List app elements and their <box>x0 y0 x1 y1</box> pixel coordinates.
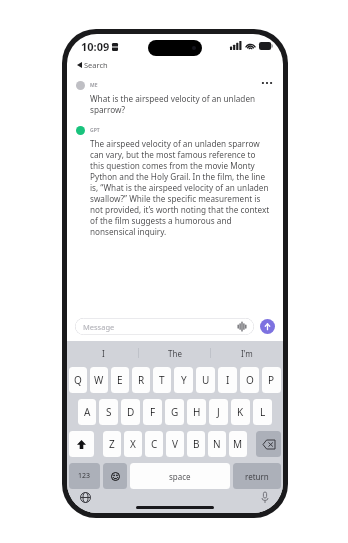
staticText: U <box>202 373 210 387</box>
button[interactable]: Emoji <box>103 463 127 489</box>
staticText: T <box>159 373 165 387</box>
button[interactable]: B <box>187 431 205 457</box>
button[interactable]: C <box>145 431 163 457</box>
button[interactable]: J <box>209 399 228 425</box>
staticText: G <box>171 405 179 419</box>
button[interactable]: X <box>124 431 142 457</box>
button[interactable]: S <box>99 399 118 425</box>
staticText: I'm <box>241 348 253 359</box>
button[interactable]: V <box>166 431 184 457</box>
button[interactable]: A <box>78 399 96 425</box>
staticText: J <box>217 405 220 419</box>
staticText: W <box>94 373 104 387</box>
button[interactable]: Message <box>75 318 254 335</box>
button[interactable]: Change keyboard language <box>77 489 93 505</box>
button[interactable]: D <box>121 399 140 425</box>
staticText: N <box>213 437 221 451</box>
staticText: The <box>168 348 182 359</box>
button[interactable]: E <box>111 367 129 393</box>
button[interactable]: N <box>208 431 226 457</box>
staticText: H <box>193 405 201 419</box>
button[interactable]: Y <box>174 367 193 393</box>
staticText: 10:09 <box>81 39 110 54</box>
button[interactable]: T <box>153 367 171 393</box>
staticText: Y <box>181 373 187 387</box>
button[interactable]: U <box>196 367 215 393</box>
staticText: M <box>233 437 243 451</box>
button[interactable]: R <box>132 367 150 393</box>
button[interactable]: M <box>229 431 247 457</box>
staticText: Search <box>84 60 108 70</box>
staticText: space <box>169 471 191 482</box>
staticText: Z <box>109 437 115 451</box>
staticText: Message <box>83 322 115 332</box>
staticText: O <box>246 373 254 387</box>
staticText: ME <box>90 82 98 89</box>
button[interactable]: More options <box>257 73 277 93</box>
button[interactable]: Shift <box>69 431 94 457</box>
button[interactable]: Q <box>69 367 87 393</box>
staticText: K <box>237 405 244 419</box>
staticText: C <box>151 437 158 451</box>
button[interactable]: Z <box>103 431 121 457</box>
button[interactable]: G <box>165 399 184 425</box>
button[interactable]: The <box>139 341 211 365</box>
button[interactable]: 123 <box>69 463 100 489</box>
staticText: I <box>102 348 105 359</box>
button[interactable]: O <box>240 367 259 393</box>
staticText: GPT <box>90 127 100 134</box>
staticText: L <box>260 405 266 419</box>
staticText: P <box>268 373 275 387</box>
staticText: return <box>245 471 269 482</box>
button[interactable]: F <box>143 399 162 425</box>
staticText: 123 <box>78 471 91 481</box>
staticText: A <box>84 405 91 419</box>
button[interactable]: H <box>187 399 206 425</box>
staticText: S <box>106 405 112 419</box>
button[interactable]: Dictate <box>257 489 273 505</box>
staticText: Q <box>74 373 82 387</box>
staticText: The airspeed velocity of an unladen spar… <box>90 138 271 237</box>
button[interactable]: K <box>231 399 250 425</box>
button[interactable]: I <box>218 367 237 393</box>
button[interactable]: return <box>233 463 281 489</box>
staticText: X <box>130 437 136 451</box>
staticText: B <box>193 437 200 451</box>
staticText: V <box>172 437 178 451</box>
button[interactable]: Back to Search <box>77 58 283 71</box>
staticText: I <box>226 373 230 387</box>
staticText: E <box>117 373 123 387</box>
button[interactable]: W <box>90 367 108 393</box>
staticText: What is the airspeed velocity of an unla… <box>90 93 271 115</box>
button[interactable]: I'm <box>211 341 283 365</box>
button[interactable]: Backspace <box>256 431 281 457</box>
button[interactable]: space <box>130 463 230 489</box>
staticText: F <box>150 405 156 419</box>
button[interactable]: P <box>262 367 281 393</box>
staticText: D <box>127 405 135 419</box>
button[interactable]: Send <box>260 319 275 334</box>
button[interactable]: L <box>253 399 272 425</box>
button[interactable]: I <box>67 341 139 365</box>
staticText: R <box>138 373 145 387</box>
